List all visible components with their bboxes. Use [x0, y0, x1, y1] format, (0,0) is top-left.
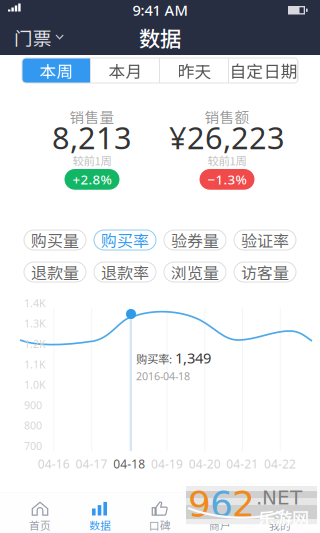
staticText: 9 — [188, 483, 211, 525]
staticText: 本月 — [108, 58, 142, 82]
staticText: 04-20 — [189, 456, 221, 472]
staticText: 04-16 — [38, 456, 70, 472]
staticText: 04-18 — [113, 456, 145, 472]
staticText: 1.3K — [24, 316, 46, 331]
staticText: .NET — [256, 486, 302, 509]
staticText: 04-17 — [76, 456, 108, 472]
staticText: 乐游网 — [258, 505, 309, 530]
staticText: 购买率: — [136, 350, 172, 367]
button[interactable]: 本周 — [22, 58, 91, 83]
staticText: 购买量 — [31, 228, 79, 252]
staticText: 购买率 — [101, 228, 149, 252]
staticText: 1.4K — [24, 296, 46, 310]
button[interactable]: 首页 — [10, 492, 70, 533]
button[interactable]: 口碑 — [130, 492, 190, 533]
button[interactable]: 购买量 — [24, 230, 86, 250]
staticText: 销售额 — [204, 106, 249, 127]
staticText: −1.3% — [207, 170, 246, 188]
button[interactable]: 我的 — [250, 492, 310, 533]
staticText: 6 — [210, 483, 233, 525]
staticText: 1,349 — [175, 348, 211, 367]
staticText: 退款量 — [31, 260, 79, 284]
button[interactable]: 浏览量 — [164, 262, 226, 282]
staticText: 访客量 — [241, 260, 289, 284]
staticText: 1.0K — [24, 378, 46, 392]
button[interactable]: 门票 — [0, 20, 78, 55]
staticText: 数据 — [139, 22, 181, 53]
staticText: 本周 — [39, 58, 73, 82]
staticText: 自定日期 — [229, 58, 297, 82]
staticText: 首页 — [29, 517, 51, 533]
staticText: 门票 — [14, 24, 52, 51]
staticText: 700 — [24, 439, 42, 453]
staticText: 800 — [24, 418, 42, 433]
staticText: 浏览量 — [171, 260, 219, 284]
staticText: +2.8% — [72, 170, 111, 188]
staticText: 验证率 — [241, 228, 289, 252]
staticText: 9:41 AM — [132, 0, 187, 20]
staticText: 较前1周 — [72, 152, 111, 168]
button[interactable]: 自定日期 — [229, 58, 298, 83]
button[interactable]: 购买率 — [94, 230, 156, 250]
button[interactable]: 商户 — [190, 492, 250, 533]
staticText: 商户 — [209, 517, 231, 533]
staticText: 1.2K — [24, 337, 46, 351]
staticText: 我的 — [269, 517, 291, 533]
button[interactable]: 访客量 — [234, 262, 296, 282]
button[interactable]: 退款率 — [94, 262, 156, 282]
staticText: 2016-04-18 — [136, 369, 190, 383]
staticText: 04-19 — [151, 456, 183, 472]
staticText: 900 — [24, 398, 42, 412]
staticText: 8,213 — [52, 117, 132, 158]
staticText: 验券量 — [171, 228, 219, 252]
staticText: ¥26,223 — [169, 117, 285, 158]
staticText: 1.1K — [24, 357, 46, 371]
staticText: 口碑 — [149, 517, 171, 533]
button[interactable]: 数据 — [70, 492, 130, 533]
button[interactable]: 退款量 — [24, 262, 86, 282]
button[interactable]: 昨天 — [160, 58, 229, 83]
button[interactable]: 验证率 — [234, 230, 296, 250]
staticText: 04-22 — [264, 456, 296, 472]
button[interactable]: 验券量 — [164, 230, 226, 250]
staticText: 昨天 — [177, 58, 211, 82]
button[interactable]: 本月 — [91, 58, 160, 83]
staticText: 销售量 — [69, 106, 114, 127]
staticText: 2 — [232, 483, 255, 525]
staticText: 04-21 — [226, 456, 258, 472]
staticText: 数据 — [89, 517, 111, 533]
staticText: 退款率 — [101, 260, 149, 284]
staticText: 较前1周 — [207, 152, 246, 168]
